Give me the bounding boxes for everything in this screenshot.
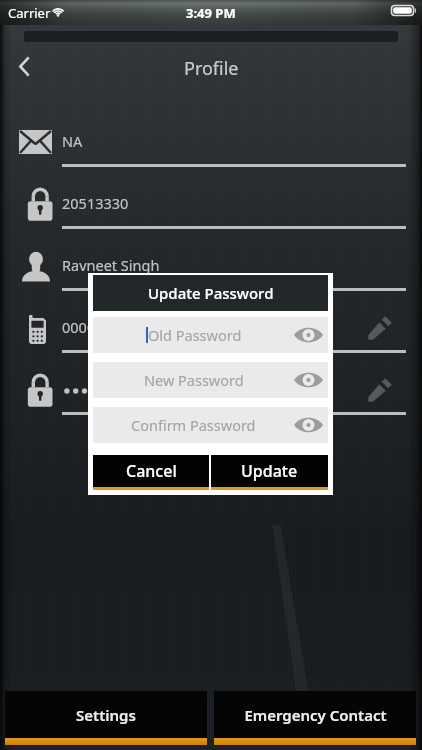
button[interactable]: Cancel <box>93 455 209 490</box>
staticText: 0000000000 <box>62 317 145 337</box>
button[interactable]: Show password <box>294 371 323 389</box>
staticText: Settings <box>76 705 136 725</box>
button[interactable]: Show password <box>294 416 323 434</box>
button[interactable]: Show password <box>294 326 323 344</box>
button[interactable]: Edit <box>362 310 398 346</box>
button[interactable]: 20513330 <box>0 170 422 232</box>
staticText: New Password <box>144 370 244 390</box>
button[interactable]: Old Password <box>93 317 328 353</box>
staticText: Update Password <box>148 283 274 303</box>
staticText: NA <box>62 131 83 151</box>
staticText: Cancel <box>126 460 177 482</box>
staticText: Confirm Password <box>131 415 256 435</box>
staticText: 3:49 PM <box>186 4 236 22</box>
staticText: Update <box>241 460 298 482</box>
staticText: 20513330 <box>62 193 129 213</box>
button[interactable]: New Password <box>93 362 328 398</box>
button[interactable]: Password <box>0 356 422 418</box>
staticText: Old Password <box>148 325 242 345</box>
staticText: Carrier <box>8 4 51 22</box>
button[interactable]: NA <box>0 108 422 170</box>
button[interactable]: Back <box>7 49 41 83</box>
other: Password <box>62 386 142 396</box>
button[interactable]: 0000000000 <box>0 294 422 356</box>
button[interactable]: Update <box>211 455 328 490</box>
button[interactable]: Emergency Contact <box>214 691 416 745</box>
staticText: Emergency Contact <box>244 705 387 725</box>
button[interactable]: Ravneet Singh <box>0 232 422 294</box>
button[interactable]: Edit <box>362 372 398 408</box>
button[interactable]: Settings <box>5 691 207 745</box>
button[interactable]: Confirm Password <box>93 407 328 443</box>
staticText: Profile <box>184 56 239 81</box>
staticText: Ravneet Singh <box>62 255 160 275</box>
